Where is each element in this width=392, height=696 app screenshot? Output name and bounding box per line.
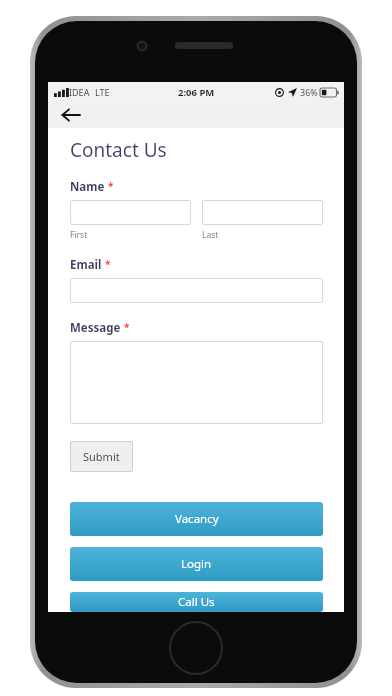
staticText: Call Us	[178, 594, 215, 610]
staticText: 36%	[300, 86, 318, 98]
staticText: Login	[181, 556, 212, 572]
staticText: Contact Us	[70, 137, 167, 163]
button[interactable]: Text field	[202, 200, 323, 225]
button[interactable]: Text field	[70, 278, 323, 303]
button[interactable]: Text field	[70, 341, 323, 424]
button[interactable]: Back	[56, 103, 84, 127]
staticText: *	[108, 179, 114, 193]
staticText: Message	[70, 320, 121, 336]
button[interactable]: Login	[70, 547, 323, 581]
staticText: Last	[202, 229, 219, 241]
button[interactable]: Text field	[70, 200, 191, 225]
staticText: 2:06 PM	[178, 86, 215, 99]
staticText: Submit	[83, 449, 120, 464]
button[interactable]: Call Us	[70, 592, 323, 612]
staticText: Name	[70, 179, 105, 195]
button[interactable]: Vacancy	[70, 502, 323, 536]
staticText: IDEA	[69, 86, 90, 98]
staticText: *	[124, 320, 130, 334]
staticText: Email	[70, 257, 102, 273]
button[interactable]: Submit	[70, 441, 133, 472]
staticText: Vacancy	[175, 511, 219, 527]
staticText: First	[70, 229, 88, 241]
staticText: LTE	[95, 86, 110, 98]
staticText: *	[105, 257, 111, 271]
